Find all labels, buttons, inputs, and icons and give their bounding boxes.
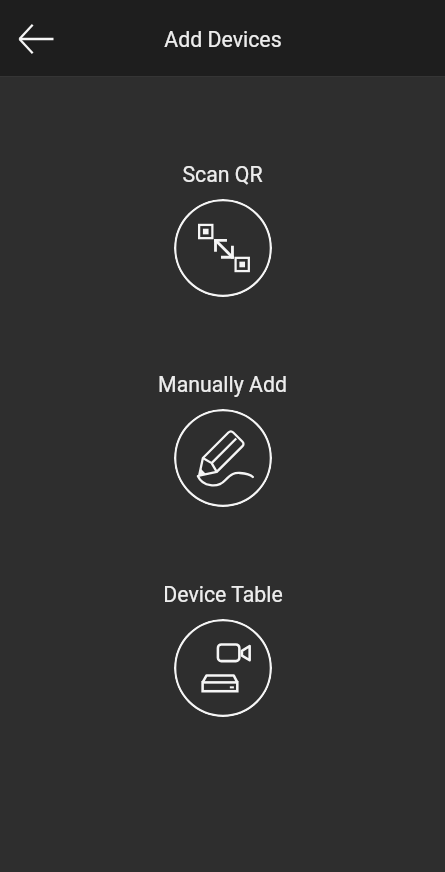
staticText: Scan QR [182, 162, 263, 187]
staticText: Manually Add [158, 372, 287, 397]
button[interactable]: Manually Add [174, 409, 272, 507]
staticText: Device Table [163, 582, 283, 607]
button[interactable]: Back [9, 11, 65, 67]
button[interactable]: Device Table [174, 619, 272, 717]
button[interactable]: Scan QR [174, 199, 272, 297]
staticText: Add Devices [164, 27, 282, 52]
